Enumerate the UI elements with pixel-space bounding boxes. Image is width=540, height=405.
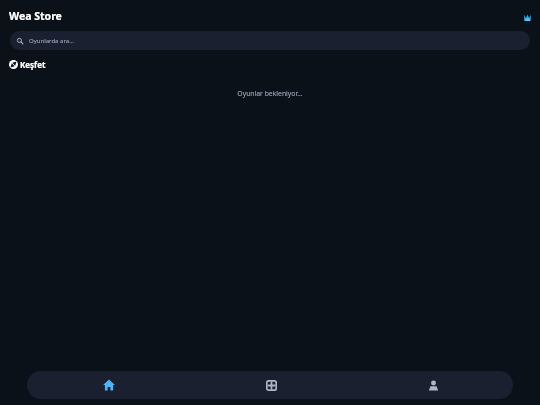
staticText: Wea Store bbox=[9, 9, 62, 23]
staticText: Keşfet bbox=[20, 59, 46, 70]
button[interactable]: Oyunlarda ara... bbox=[10, 31, 530, 50]
button[interactable]: Profile bbox=[351, 371, 513, 399]
button[interactable]: Keşfet bbox=[9, 59, 46, 70]
button[interactable]: Home bbox=[27, 371, 189, 399]
staticText: Oyunlarda ara... bbox=[29, 37, 74, 45]
button[interactable]: Premium bbox=[521, 11, 534, 24]
button[interactable]: Categories bbox=[189, 371, 351, 399]
staticText: Oyunlar bekleniyor... bbox=[0, 89, 540, 98]
